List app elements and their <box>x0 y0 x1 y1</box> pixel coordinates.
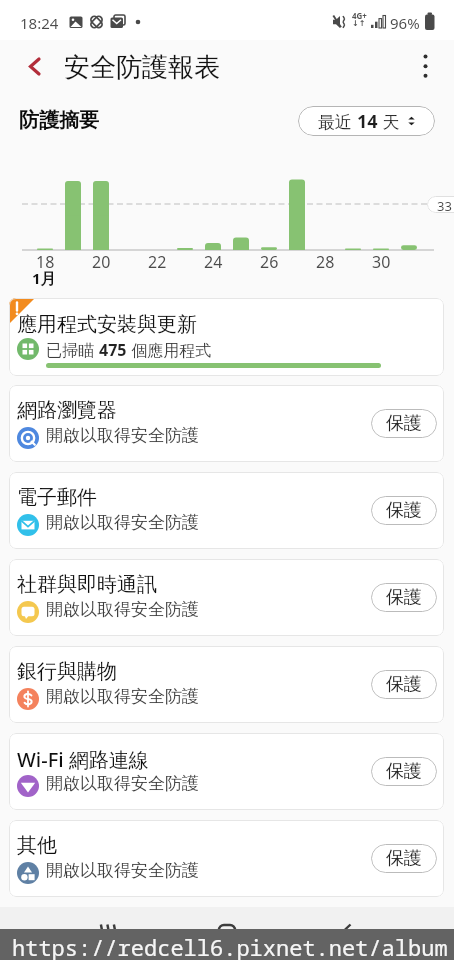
button[interactable]: 保護 <box>371 757 437 786</box>
staticText: 開啟以取得安全防護 <box>46 599 199 620</box>
staticText: 26 <box>260 251 279 273</box>
button[interactable]: 保護 <box>371 670 437 699</box>
button[interactable]: Wi-Fi 網路連線 <box>9 733 444 810</box>
staticText: 28 <box>316 251 335 273</box>
staticText: 22 <box>148 251 167 273</box>
button[interactable]: More options <box>402 43 449 90</box>
staticText: 已掃瞄 <box>46 339 99 361</box>
button[interactable]: 社群與即時通訊 <box>9 559 444 636</box>
staticText: 475 <box>99 339 127 361</box>
staticText: 應用程式安裝與更新 <box>17 312 197 337</box>
staticText: 1月 <box>32 268 56 288</box>
staticText: 開啟以取得安全防護 <box>46 512 199 533</box>
staticText: 保護 <box>386 499 422 522</box>
staticText: 銀行與購物 <box>17 659 117 684</box>
staticText: 開啟以取得安全防護 <box>46 773 199 794</box>
staticText: 其他 <box>17 833 57 858</box>
staticText: 18:24 <box>20 13 59 33</box>
button[interactable]: Recents <box>85 909 133 957</box>
staticText: Wi-Fi 網路連線 <box>17 746 149 773</box>
staticText: 保護 <box>386 760 422 783</box>
staticText: 30 <box>372 251 391 273</box>
staticText: 4G+ <box>352 10 367 21</box>
button[interactable]: 保護 <box>371 583 437 612</box>
staticText: 14 <box>357 109 378 134</box>
button[interactable]: 保護 <box>371 844 437 873</box>
staticText: 開啟以取得安全防護 <box>46 425 199 446</box>
staticText: 96% <box>390 13 420 33</box>
staticText: 社群與即時通訊 <box>17 572 157 597</box>
staticText: 天 <box>378 110 400 133</box>
staticText: ↓↑ <box>352 19 366 28</box>
button[interactable]: 保護 <box>371 496 437 525</box>
staticText: 網路瀏覽器 <box>17 398 117 423</box>
staticText: 20 <box>92 251 111 273</box>
staticText: 24 <box>204 251 223 273</box>
staticText: 安全防護報表 <box>64 51 220 84</box>
staticText: 個應用程式 <box>127 339 212 361</box>
staticText: 防護摘要 <box>19 108 99 133</box>
button[interactable]: 最近 <box>298 106 435 136</box>
button[interactable]: Back <box>11 43 58 90</box>
staticText: 保護 <box>386 412 422 435</box>
button[interactable]: 電子郵件 <box>9 472 444 549</box>
staticText: 18 <box>36 251 55 273</box>
staticText: 電子郵件 <box>17 485 97 510</box>
staticText: 開啟以取得安全防護 <box>46 686 199 707</box>
button[interactable]: 其他 <box>9 820 444 897</box>
staticText: 開啟以取得安全防護 <box>46 860 199 881</box>
button[interactable]: 保護 <box>371 409 437 438</box>
staticText: 保護 <box>386 586 422 609</box>
staticText: https://redcell6.pixnet.net/album <box>12 932 448 960</box>
button[interactable]: 應用程式安裝與更新 <box>9 298 444 376</box>
staticText: 33 <box>437 197 452 213</box>
staticText: 保護 <box>386 673 422 696</box>
button[interactable]: Back <box>322 909 370 957</box>
button[interactable]: Home <box>203 909 251 957</box>
staticText: 保護 <box>386 847 422 870</box>
button[interactable]: 銀行與購物 <box>9 646 444 723</box>
staticText: 最近 <box>318 110 357 133</box>
button[interactable]: 網路瀏覽器 <box>9 385 444 462</box>
